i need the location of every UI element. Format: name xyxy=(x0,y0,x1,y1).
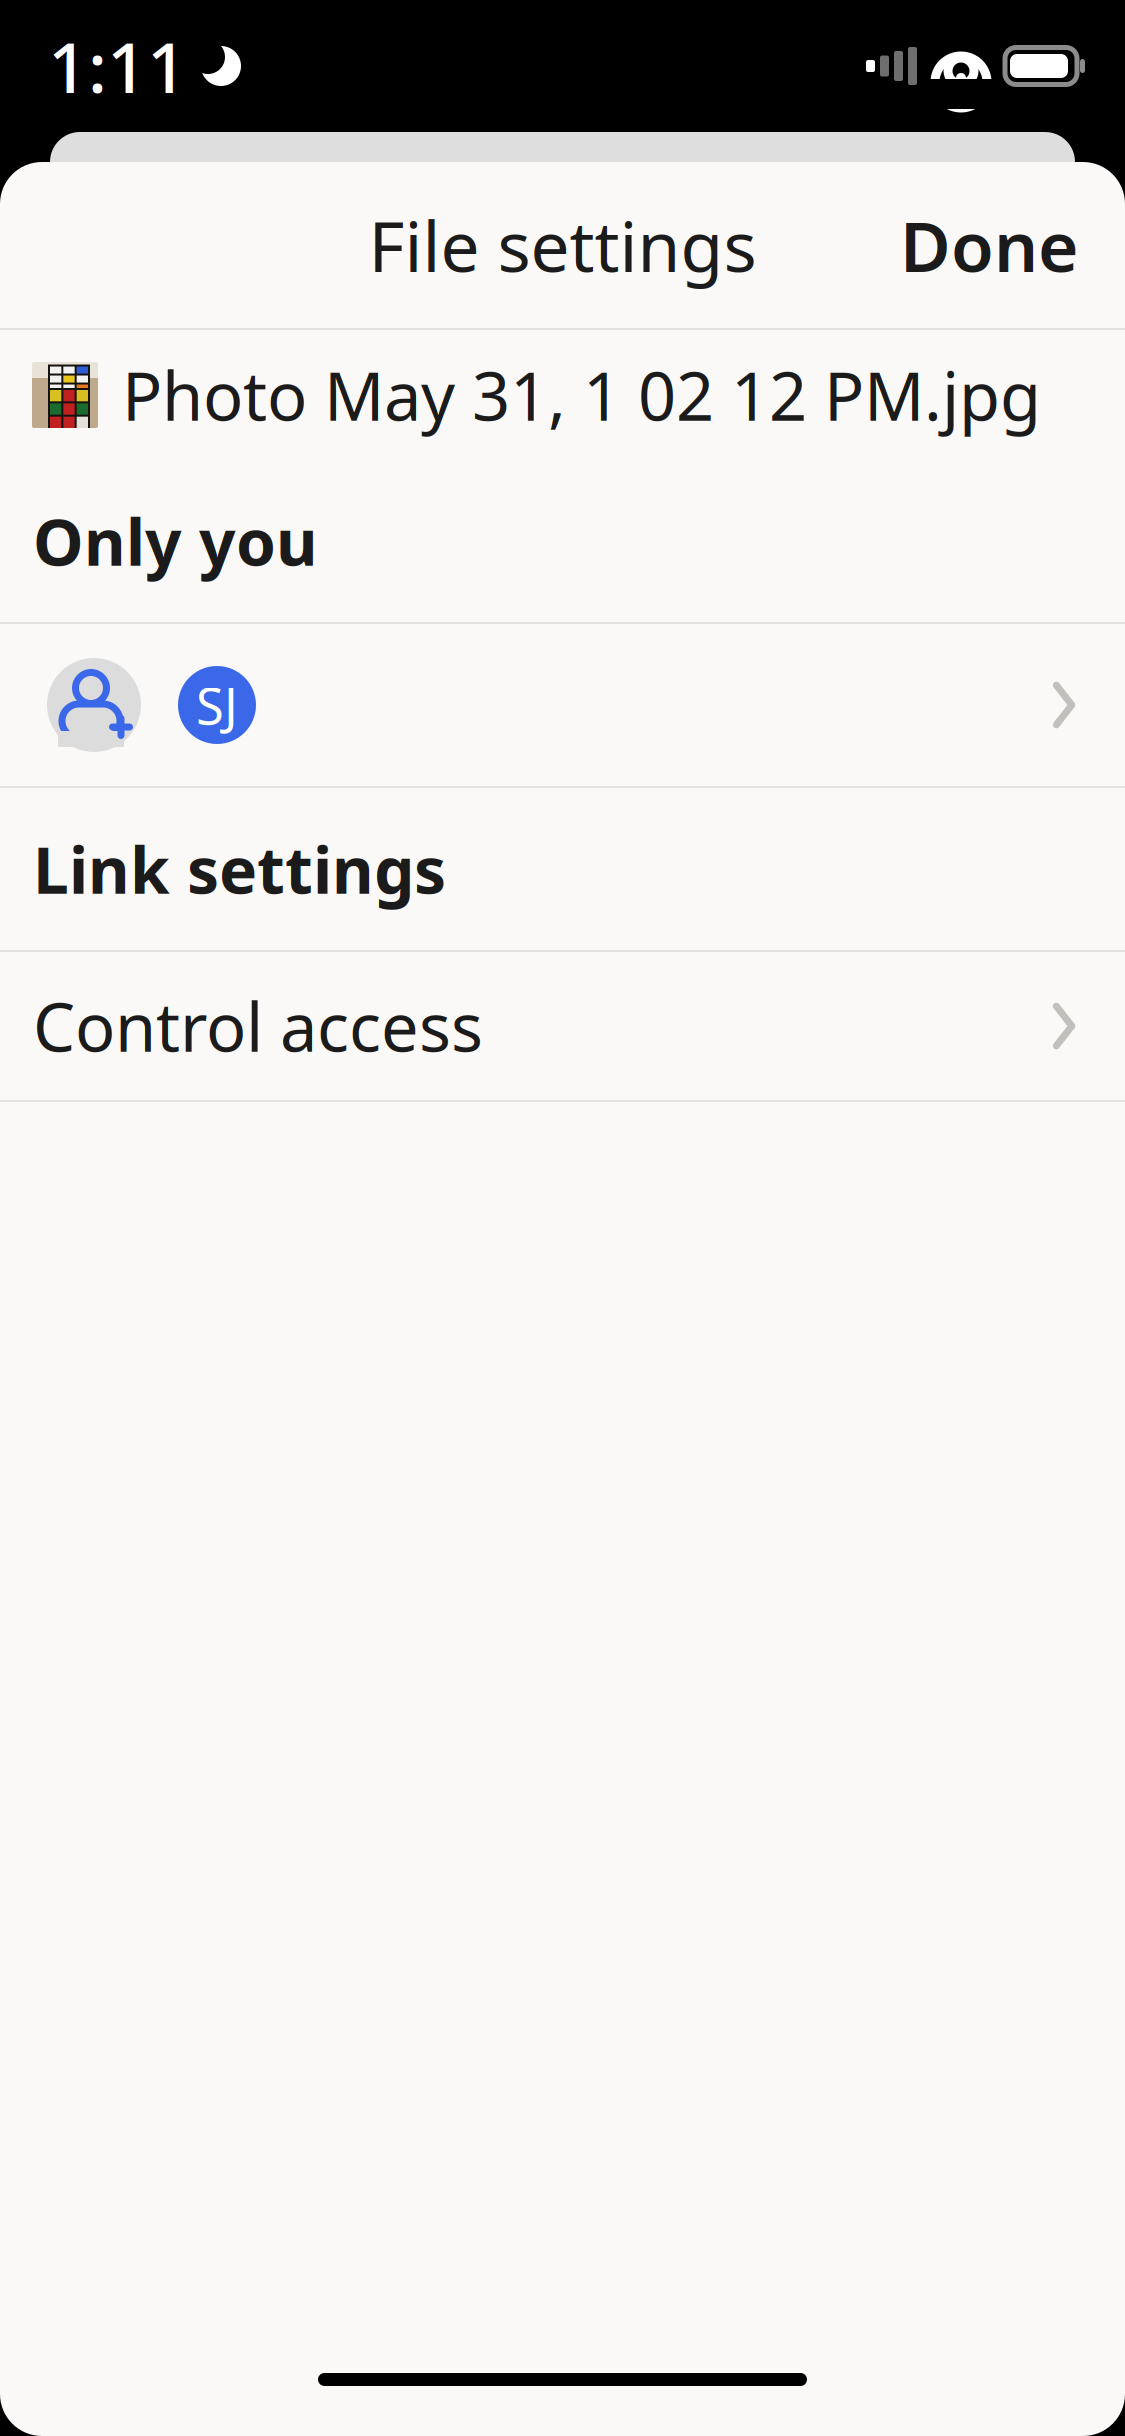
staticText: Done xyxy=(900,199,1079,291)
staticText: Only you xyxy=(33,498,318,583)
staticText: Control access xyxy=(33,982,483,1070)
staticText: SJ xyxy=(196,671,238,739)
button[interactable]: Done xyxy=(870,177,1109,313)
staticText: Photo May 31, 1 02 12 PM.jpg xyxy=(122,351,1041,439)
staticText: 1:11 xyxy=(48,20,187,112)
button[interactable]: Control access xyxy=(0,952,1125,1100)
button[interactable]: SJ xyxy=(0,624,1125,786)
staticText: Link settings xyxy=(33,826,446,911)
staticText: File settings xyxy=(368,199,756,291)
button[interactable]: Photo May 31, 1 02 12 PM.jpg xyxy=(0,330,1125,460)
